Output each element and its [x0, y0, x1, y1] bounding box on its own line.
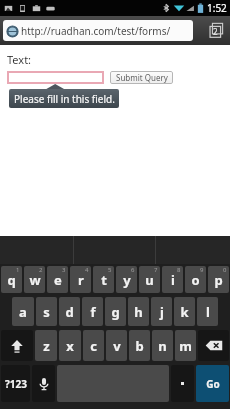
staticText: http://ruadhan.com/test/forms/requ…	[21, 24, 193, 38]
staticText: q	[7, 271, 16, 289]
staticText: j	[160, 303, 164, 321]
button[interactable]: b	[129, 330, 150, 361]
button[interactable]: t	[93, 266, 114, 293]
button[interactable]: m	[175, 330, 196, 361]
button[interactable]: Tabs	[208, 22, 225, 39]
staticText: l	[206, 303, 210, 321]
staticText: Submit Query	[116, 72, 168, 83]
staticText: o	[191, 271, 200, 289]
staticText: m	[179, 337, 192, 355]
button[interactable]	[171, 365, 194, 402]
button[interactable]: o	[185, 266, 206, 293]
staticText: 1:52	[207, 1, 227, 15]
staticText: 7	[154, 266, 158, 274]
staticText: i	[171, 271, 175, 289]
button[interactable]: r	[70, 266, 91, 293]
staticText: a	[19, 303, 27, 321]
staticText: 1	[16, 266, 20, 274]
staticText: n	[158, 337, 167, 355]
button[interactable]: u	[139, 266, 160, 293]
button[interactable]: Go	[196, 365, 229, 402]
button[interactable]: w	[24, 266, 45, 293]
staticText: p	[214, 271, 223, 289]
staticText: k	[180, 303, 189, 321]
button[interactable]: q	[1, 266, 22, 293]
button[interactable]: z	[35, 330, 57, 361]
staticText: 4	[85, 266, 89, 274]
button[interactable]: j	[151, 297, 172, 326]
button[interactable]: c	[83, 330, 104, 361]
staticText: r	[78, 271, 84, 289]
button[interactable]: l	[197, 297, 218, 326]
staticText: ?123	[5, 377, 27, 391]
button[interactable]: Shift	[1, 330, 33, 361]
staticText: 2	[213, 26, 218, 37]
staticText: d	[65, 303, 74, 321]
button[interactable]	[7, 71, 104, 84]
button[interactable]: f	[82, 297, 103, 326]
staticText: 3	[62, 266, 66, 274]
button[interactable]: s	[36, 297, 57, 326]
staticText: 5	[108, 266, 112, 274]
staticText: g	[111, 303, 120, 321]
staticText: t	[101, 271, 107, 289]
staticText: 8	[177, 266, 181, 274]
staticText: 2	[39, 266, 43, 274]
staticText: 6	[131, 266, 135, 274]
staticText: Text:	[7, 52, 32, 67]
button[interactable]: d	[59, 297, 80, 326]
staticText: s	[43, 303, 50, 321]
button[interactable]: i	[162, 266, 183, 293]
staticText: 9	[200, 266, 204, 274]
staticText: b	[135, 337, 144, 355]
button[interactable]: p	[208, 266, 229, 293]
button[interactable]: h	[128, 297, 149, 326]
staticText: c	[90, 337, 97, 355]
button[interactable]: g	[105, 297, 126, 326]
button[interactable]: e	[47, 266, 68, 293]
button[interactable]: a	[12, 297, 34, 326]
button[interactable]: y	[116, 266, 137, 293]
button[interactable]: k	[174, 297, 195, 326]
button[interactable]: Voice input	[32, 365, 55, 402]
button[interactable]: Backspace	[198, 330, 229, 361]
staticText: e	[54, 271, 62, 289]
button[interactable]: n	[152, 330, 173, 361]
button[interactable]: Submit Query	[110, 71, 173, 84]
staticText: z	[43, 337, 50, 355]
staticText: y	[123, 271, 131, 289]
staticText: Please fill in this field.	[14, 92, 115, 106]
staticText: Go	[206, 377, 220, 391]
staticText: u	[145, 271, 154, 289]
staticText: h	[134, 303, 143, 321]
staticText: 0	[223, 266, 227, 274]
staticText: v	[113, 337, 121, 355]
button[interactable]: v	[106, 330, 127, 361]
button[interactable]: http://ruadhan.com/test/forms/requ…	[3, 20, 193, 41]
staticText: x	[66, 337, 74, 355]
staticText: w	[29, 271, 41, 289]
button[interactable]: ?123	[1, 365, 30, 402]
staticText: f	[90, 303, 96, 321]
button[interactable]: x	[59, 330, 81, 361]
